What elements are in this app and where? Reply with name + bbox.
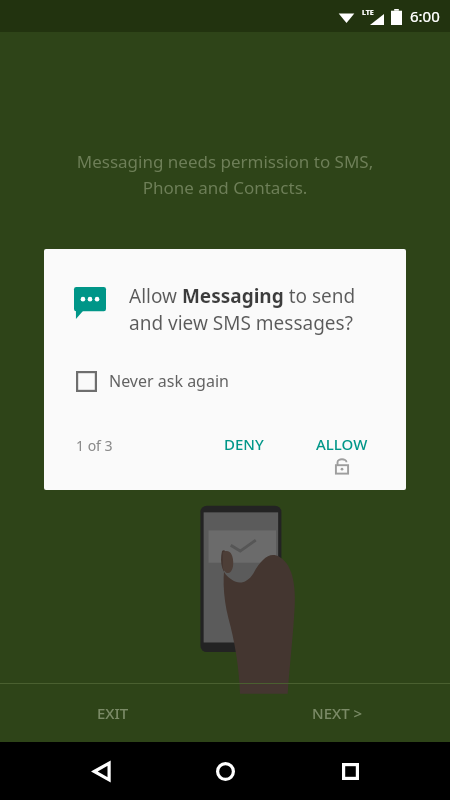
button[interactable]: DENY [204,428,284,460]
button[interactable]: NEXT > [225,684,450,742]
staticText: LTE [362,8,374,18]
staticText: Messaging needs permission to SMS, Phone… [24,150,426,199]
button[interactable]: Home [201,747,249,795]
staticText: ALLOW [316,434,368,454]
staticText: EXIT [97,703,129,723]
button[interactable]: ALLOW [300,428,384,480]
button[interactable]: Back [77,747,125,795]
button[interactable]: Never ask again [72,364,233,398]
staticText: 1 of 3 [76,436,113,455]
button[interactable]: EXIT [0,684,225,742]
staticText: Allow Messaging to send and view SMS mes… [129,283,380,336]
staticText: 6:00 [410,6,440,26]
staticText: NEXT > [312,703,363,723]
button[interactable]: Recent apps [326,747,374,795]
staticText: DENY [224,434,264,454]
staticText: Never ask again [109,370,229,392]
